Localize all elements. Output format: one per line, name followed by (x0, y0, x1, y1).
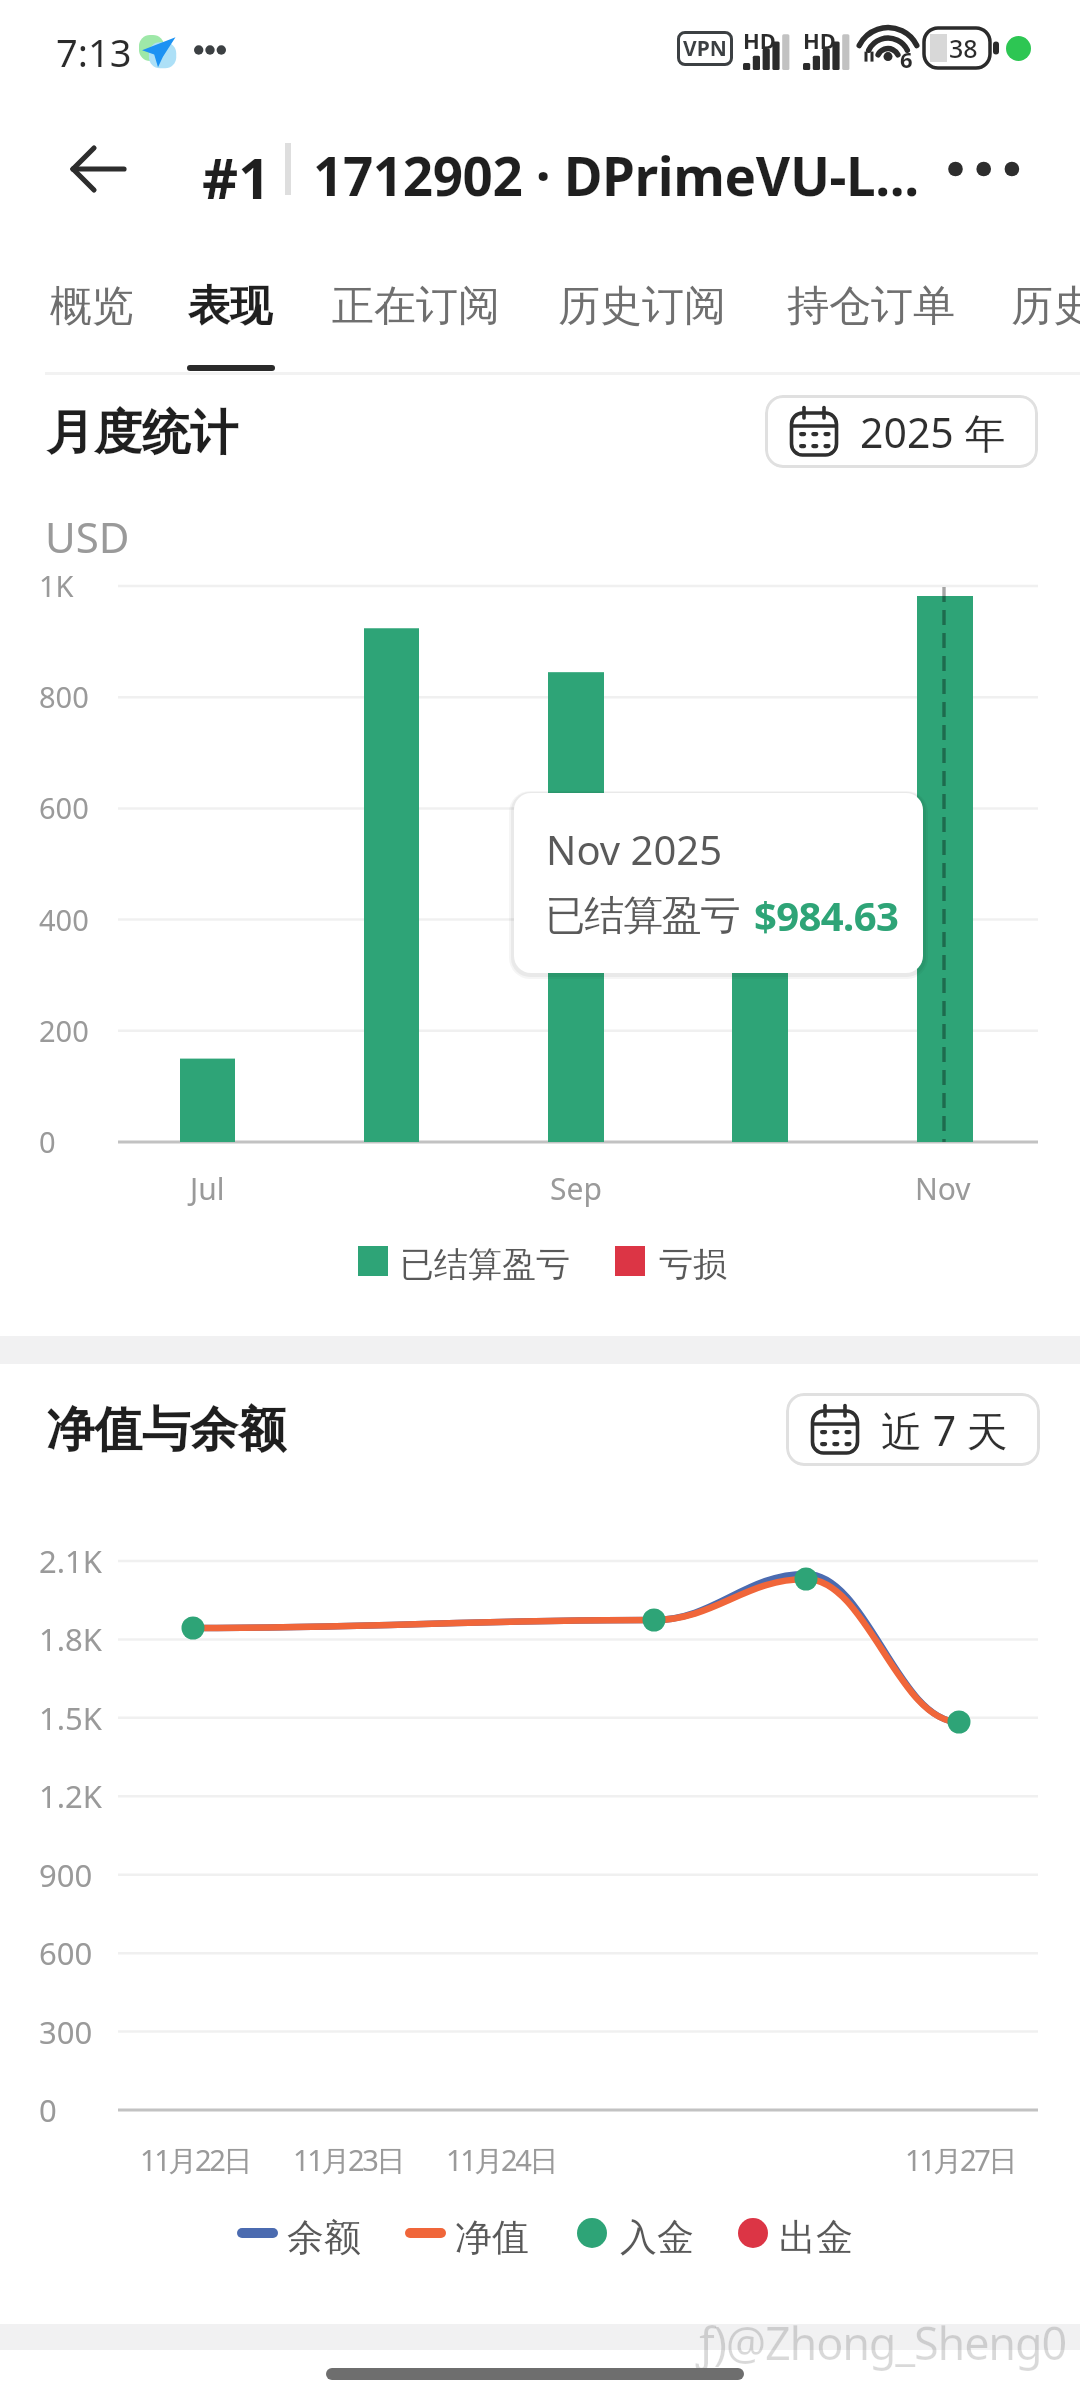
staticText: 200 (39, 1011, 89, 1050)
staticText: 余额 (287, 2214, 361, 2261)
button[interactable]: 历史 (989, 262, 1080, 370)
button[interactable]: 近 7 天 (786, 1393, 1040, 1466)
staticText: 入金 (620, 2214, 694, 2261)
staticText: 2.1K (39, 1540, 102, 1582)
button[interactable]: 持仓订单 (765, 262, 1011, 370)
button[interactable]: 表现 (166, 262, 328, 370)
staticText: HD (803, 25, 836, 55)
staticText: 6 (900, 44, 913, 74)
staticText: 1712902 · DPrimeVU-L... (313, 139, 919, 211)
staticText: 600 (39, 1932, 93, 1974)
staticText: 400 (39, 900, 89, 939)
staticText: 600 (39, 788, 89, 827)
staticText: 近 7 天 (881, 1402, 1008, 1458)
staticText: 历史订阅 (558, 280, 726, 333)
button[interactable]: 历史订阅 (536, 262, 782, 370)
staticText: 表现 (188, 280, 272, 333)
staticText: 净值 (455, 2214, 529, 2261)
staticText: 38 (949, 31, 978, 65)
staticText: Nov (915, 1168, 971, 1209)
staticText: 亏损 (659, 1243, 727, 1286)
staticText: 11月24日 (446, 2140, 556, 2180)
staticText: $984.63 (754, 888, 899, 942)
staticText: 概览 (50, 280, 134, 333)
staticText: 1K (39, 566, 74, 605)
staticText: 已结算盈亏 (400, 1243, 570, 1286)
staticText: 0 (39, 2089, 57, 2131)
staticText: 300 (39, 2011, 93, 2053)
button[interactable]: 概览 (28, 262, 190, 370)
staticText: 1.2K (39, 1775, 102, 1817)
staticText: USD (45, 508, 130, 565)
staticText: 1.8K (39, 1618, 102, 1660)
staticText: Sep (550, 1168, 602, 1209)
staticText: Jul (190, 1168, 225, 1209)
button[interactable]: 正在订阅 (310, 262, 556, 370)
staticText: 1.5K (39, 1697, 102, 1739)
staticText: 800 (39, 677, 89, 716)
staticText: 历史 (1011, 280, 1080, 333)
staticText: 已结算盈亏 (546, 890, 740, 940)
staticText: 出金 (779, 2214, 853, 2261)
staticText: 净值与余额 (46, 1400, 286, 1460)
staticText: #1 (202, 139, 271, 215)
staticText: 11月27日 (905, 2140, 1015, 2180)
staticText: ƒ)@Zhong_Sheng001 (696, 2312, 1080, 2373)
button[interactable]: 2025 年 (765, 395, 1038, 468)
staticText: HD (743, 25, 776, 55)
staticText: 0 (39, 1122, 56, 1161)
staticText: 11月22日 (140, 2140, 250, 2180)
staticText: 7:13 (56, 26, 132, 78)
staticText: 2025 年 (860, 404, 1006, 460)
staticText: 持仓订单 (787, 280, 955, 333)
staticText: VPN (683, 34, 727, 63)
staticText: Nov 2025 (546, 822, 723, 876)
staticText: 11月23日 (293, 2140, 403, 2180)
staticText: 900 (39, 1854, 93, 1896)
button[interactable]: Back (56, 129, 140, 209)
button[interactable]: More options (935, 131, 1039, 207)
staticText: 正在订阅 (332, 280, 500, 333)
staticText: 月度统计 (46, 403, 238, 463)
